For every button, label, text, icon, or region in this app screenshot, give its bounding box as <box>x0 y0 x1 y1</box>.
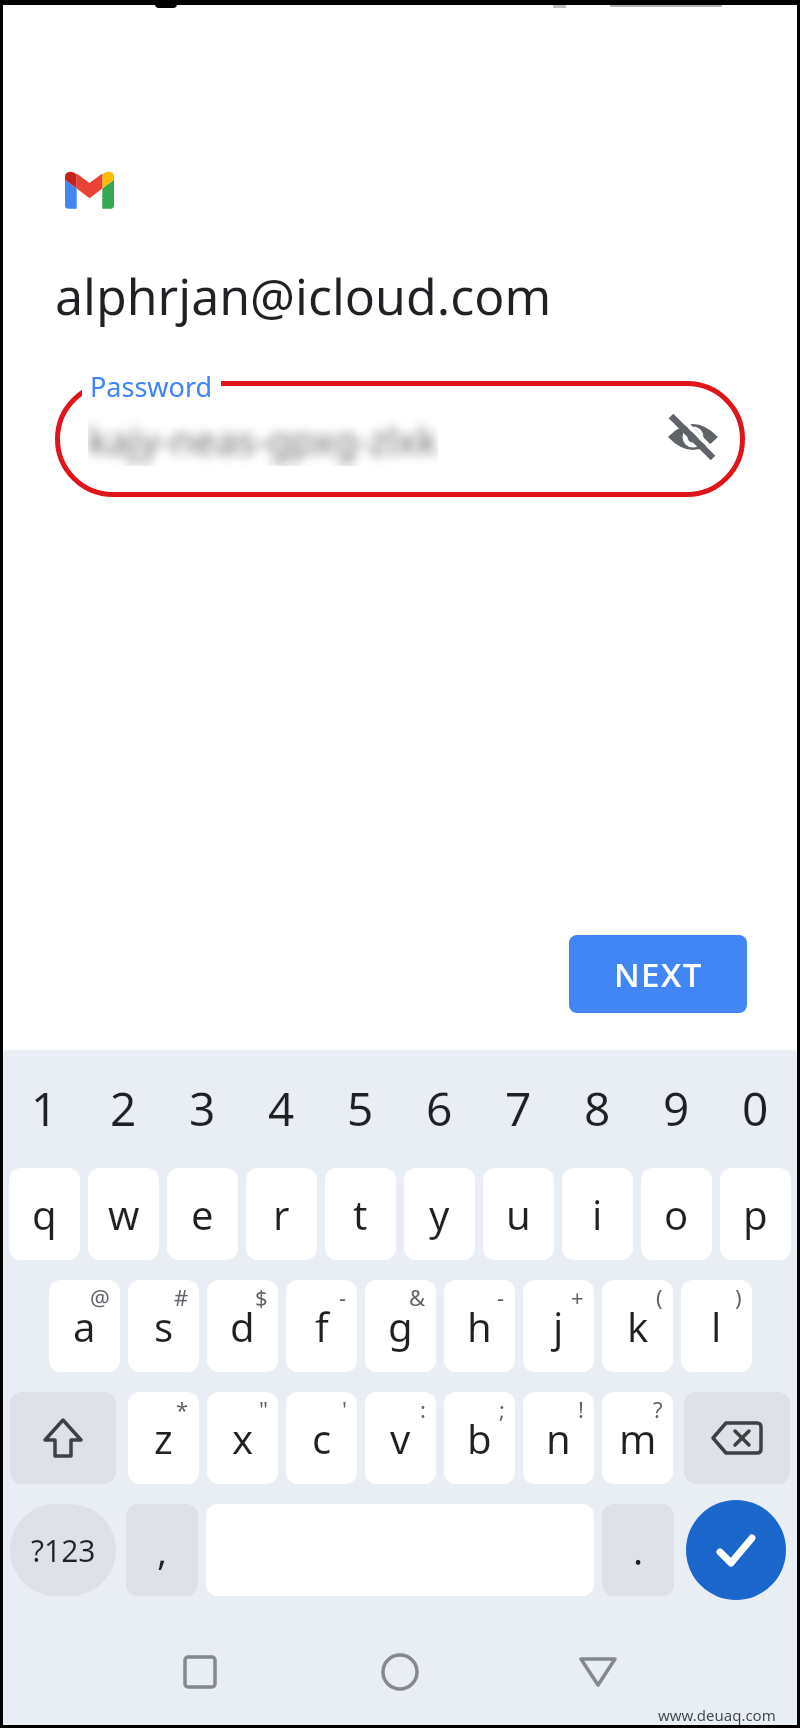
button[interactable]: i <box>562 1168 633 1260</box>
staticText: 7 <box>505 1077 532 1140</box>
staticText: ) <box>735 1282 742 1312</box>
staticText: " <box>259 1394 268 1424</box>
staticText: r <box>273 1187 290 1241</box>
button[interactable]: 0 <box>716 1076 794 1140</box>
staticText: 6 <box>426 1077 453 1140</box>
button[interactable] <box>10 1392 116 1484</box>
staticText: s <box>154 1299 174 1353</box>
button[interactable]: y <box>404 1168 475 1260</box>
button[interactable]: o <box>641 1168 712 1260</box>
staticText: h <box>467 1299 492 1353</box>
button[interactable]: 1 <box>5 1076 83 1140</box>
button[interactable]: , <box>126 1504 198 1596</box>
staticText: 3 <box>189 1077 216 1140</box>
button[interactable]: j <box>523 1280 594 1372</box>
button[interactable]: u <box>483 1168 554 1260</box>
staticText: d <box>230 1299 255 1353</box>
staticText: ' <box>342 1394 347 1424</box>
staticText: - <box>339 1282 347 1312</box>
button[interactable]: . <box>602 1504 674 1596</box>
staticText: @ <box>90 1282 110 1312</box>
staticText: t <box>353 1187 368 1241</box>
staticText: u <box>506 1187 531 1241</box>
button[interactable] <box>686 1500 786 1600</box>
staticText: k <box>627 1299 649 1353</box>
button[interactable]: s <box>128 1280 199 1372</box>
staticText: c <box>312 1411 332 1465</box>
staticText: 1 <box>31 1077 58 1140</box>
button[interactable]: d <box>207 1280 278 1372</box>
button[interactable]: c <box>286 1392 357 1484</box>
button[interactable]: 4 <box>242 1076 320 1140</box>
staticText: x <box>232 1411 254 1465</box>
staticText: ? <box>653 1394 663 1424</box>
staticText: 9 <box>663 1077 690 1140</box>
button[interactable]: ?123 <box>10 1504 116 1596</box>
button[interactable]: m <box>602 1392 673 1484</box>
staticText: 2 <box>110 1077 137 1140</box>
button[interactable]: a <box>49 1280 120 1372</box>
button[interactable] <box>578 1656 618 1688</box>
button[interactable]: 6 <box>400 1076 478 1140</box>
staticText: , <box>157 1524 168 1576</box>
staticText: - <box>497 1282 505 1312</box>
button[interactable]: g <box>365 1280 436 1372</box>
button[interactable]: n <box>523 1392 594 1484</box>
staticText: www.deuaq.com <box>658 1705 776 1725</box>
staticText: : <box>420 1394 426 1424</box>
button[interactable]: r <box>246 1168 317 1260</box>
button[interactable]: p <box>720 1168 791 1260</box>
staticText: NEXT <box>614 952 703 997</box>
button[interactable]: b <box>444 1392 515 1484</box>
staticText: g <box>388 1299 413 1353</box>
button[interactable]: w <box>88 1168 159 1260</box>
button[interactable] <box>381 1653 419 1691</box>
button[interactable]: 3 <box>163 1076 241 1140</box>
staticText: ?123 <box>31 1530 96 1571</box>
button[interactable] <box>664 410 724 470</box>
button[interactable]: 2 <box>84 1076 162 1140</box>
button[interactable]: l <box>681 1280 752 1372</box>
button[interactable] <box>183 1655 217 1689</box>
staticText: 5 <box>347 1077 374 1140</box>
staticText: & <box>409 1282 426 1312</box>
staticText: # <box>174 1282 189 1312</box>
staticText: a <box>73 1299 96 1353</box>
button[interactable]: k <box>602 1280 673 1372</box>
button[interactable]: v <box>365 1392 436 1484</box>
staticText: * <box>176 1394 189 1424</box>
staticText: + <box>571 1282 584 1312</box>
button[interactable]: q <box>9 1168 80 1260</box>
staticText: z <box>154 1411 173 1465</box>
staticText: . <box>633 1524 644 1576</box>
staticText: m <box>619 1411 657 1465</box>
staticText: f <box>315 1299 329 1353</box>
staticText: alphrjan@icloud.com <box>55 262 552 330</box>
staticText: n <box>546 1411 571 1465</box>
button[interactable]: e <box>167 1168 238 1260</box>
staticText: ! <box>578 1394 584 1424</box>
button[interactable]: 8 <box>558 1076 636 1140</box>
staticText: $ <box>255 1282 268 1312</box>
button[interactable]: t <box>325 1168 396 1260</box>
button[interactable]: x <box>207 1392 278 1484</box>
staticText: ( <box>656 1282 663 1312</box>
button[interactable]: NEXT <box>569 935 747 1013</box>
button[interactable]: 7 <box>479 1076 557 1140</box>
staticText: l <box>711 1299 722 1353</box>
button[interactable]: f <box>286 1280 357 1372</box>
staticText: kajy-neas-gpxg-zlxk <box>88 414 438 466</box>
button[interactable] <box>684 1392 790 1484</box>
button[interactable]: z <box>128 1392 199 1484</box>
staticText: v <box>390 1411 411 1465</box>
button[interactable]: 9 <box>637 1076 715 1140</box>
staticText: o <box>664 1187 689 1241</box>
button[interactable]: 5 <box>321 1076 399 1140</box>
staticText: Password <box>90 368 213 405</box>
button[interactable]: h <box>444 1280 515 1372</box>
staticText: p <box>743 1187 768 1241</box>
staticText: w <box>108 1187 140 1241</box>
staticText: 0 <box>742 1077 769 1140</box>
staticText: 8 <box>584 1077 611 1140</box>
